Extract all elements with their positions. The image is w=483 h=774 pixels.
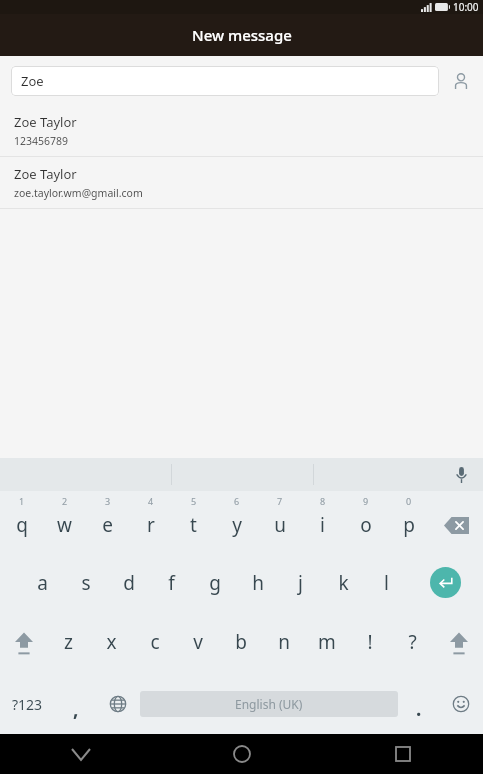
staticText: b [235, 629, 247, 655]
button[interactable]: 6 [215, 491, 258, 551]
staticText: x [106, 629, 117, 655]
staticText: i [320, 512, 325, 538]
staticText: r [147, 512, 155, 538]
staticText: 1 [19, 495, 25, 507]
staticText: 123456789 [14, 134, 69, 148]
button[interactable]: g [193, 551, 236, 614]
button[interactable]: Shift [0, 614, 47, 674]
staticText: 2 [62, 495, 68, 507]
button[interactable]: Change language [97, 674, 139, 734]
staticText: zoe.taylor.wm@gmail.com [14, 186, 143, 200]
button[interactable]: 5 [172, 491, 215, 551]
staticText: j [298, 570, 303, 596]
button[interactable]: English (UK) [139, 674, 399, 734]
staticText: . [416, 696, 422, 722]
button[interactable]: 1 [0, 491, 43, 551]
staticText: 4 [148, 495, 154, 507]
staticText: w [57, 512, 72, 538]
staticText: Zoe [21, 72, 44, 90]
staticText: q [16, 512, 28, 538]
staticText: h [252, 570, 264, 596]
button[interactable]: Home [161, 734, 322, 774]
button[interactable]: Enter [408, 551, 483, 614]
button[interactable]: b [219, 614, 262, 674]
staticText: t [190, 512, 197, 538]
button[interactable]: Zoe [11, 66, 439, 96]
button[interactable]: s [64, 551, 107, 614]
button[interactable]: ! [348, 614, 391, 674]
staticText: ?123 [12, 695, 43, 714]
button[interactable]: x [90, 614, 133, 674]
staticText: d [123, 570, 135, 596]
button[interactable]: ?123 [0, 674, 54, 734]
button[interactable]: 0 [387, 491, 430, 551]
staticText: e [102, 512, 113, 538]
button[interactable]: Delete [430, 491, 483, 551]
button[interactable]: ? [391, 614, 434, 674]
staticText: g [209, 570, 221, 596]
staticText: 9 [363, 495, 369, 507]
staticText: Zoe Taylor [14, 113, 77, 131]
button[interactable]: 4 [129, 491, 172, 551]
button[interactable]: m [305, 614, 348, 674]
staticText: c [150, 629, 160, 655]
staticText: l [384, 570, 389, 596]
staticText: , [73, 696, 79, 722]
staticText: p [403, 512, 415, 538]
staticText: s [81, 570, 91, 596]
button[interactable]: 2 [43, 491, 86, 551]
button[interactable]: z [47, 614, 90, 674]
button[interactable]: , [54, 674, 97, 734]
button[interactable]: 7 [258, 491, 301, 551]
button[interactable]: d [107, 551, 150, 614]
button[interactable]: j [279, 551, 322, 614]
staticText: 8 [320, 495, 326, 507]
staticText: 6 [234, 495, 240, 507]
button[interactable]: Hide keyboard [0, 734, 161, 774]
button[interactable]: 3 [86, 491, 129, 551]
staticText: k [338, 570, 349, 596]
button[interactable]: . [399, 674, 439, 734]
staticText: 3 [105, 495, 111, 507]
button[interactable]: Zoe Taylor [0, 157, 483, 208]
staticText: a [37, 570, 48, 596]
staticText: v [193, 629, 203, 655]
button[interactable]: a [21, 551, 64, 614]
button[interactable]: l [365, 551, 408, 614]
staticText: ! [367, 629, 373, 655]
button[interactable]: Emoji [439, 674, 483, 734]
staticText: o [360, 512, 372, 538]
staticText: 0 [406, 495, 412, 507]
staticText: Zoe Taylor [14, 165, 77, 183]
staticText: n [278, 629, 290, 655]
staticText: z [64, 629, 73, 655]
button[interactable]: Shift [434, 614, 483, 674]
button[interactable]: k [322, 551, 365, 614]
button[interactable]: Add contact [439, 56, 483, 105]
button[interactable]: f [150, 551, 193, 614]
staticText: 10:00 [453, 0, 479, 14]
staticText: New message [192, 25, 292, 45]
button[interactable]: v [176, 614, 219, 674]
button[interactable]: Recents [322, 734, 483, 774]
staticText: ? [408, 629, 417, 655]
staticText: English (UK) [235, 696, 303, 712]
staticText: u [274, 512, 286, 538]
button[interactable]: h [236, 551, 279, 614]
staticText: 7 [277, 495, 283, 507]
button[interactable]: n [262, 614, 305, 674]
button[interactable]: c [133, 614, 176, 674]
button[interactable]: 9 [344, 491, 387, 551]
staticText: y [232, 512, 242, 538]
button[interactable]: Voice input [439, 458, 483, 491]
button[interactable]: 8 [301, 491, 344, 551]
staticText: f [168, 570, 175, 596]
staticText: 5 [191, 495, 197, 507]
staticText: m [318, 629, 336, 655]
button[interactable]: Zoe Taylor [0, 105, 483, 156]
